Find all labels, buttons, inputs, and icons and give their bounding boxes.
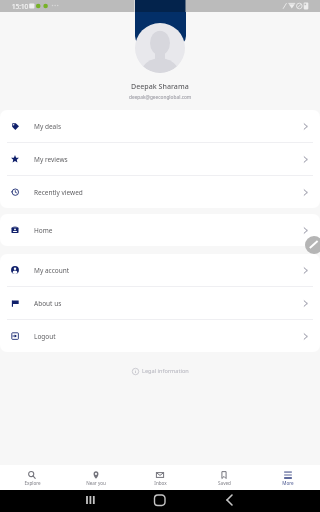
button[interactable]: Near you: [64, 465, 128, 490]
staticText: Saved: [218, 480, 231, 486]
staticText: More: [282, 480, 294, 486]
staticText: About us: [34, 299, 62, 308]
staticText: Logout: [34, 332, 56, 341]
button[interactable]: Explore: [0, 465, 64, 490]
staticText: Legal information: [142, 367, 189, 375]
button[interactable]: About us: [0, 287, 320, 319]
staticText: My reviews: [34, 155, 68, 164]
button[interactable]: Recently viewed: [0, 176, 320, 208]
button[interactable]: Legal information: [0, 367, 320, 375]
button[interactable]: Saved: [192, 465, 256, 490]
staticText: Recently viewed: [34, 188, 83, 197]
staticText: Near you: [86, 480, 106, 486]
button[interactable]: My account: [0, 254, 320, 286]
button[interactable]: My deals: [0, 110, 320, 142]
button[interactable]: More: [256, 465, 320, 490]
button[interactable]: Edit: [305, 236, 320, 254]
button[interactable]: Home: [0, 214, 320, 246]
staticText: Home: [34, 226, 53, 235]
button[interactable]: My reviews: [0, 143, 320, 175]
staticText: 15:10: [12, 2, 29, 11]
staticText: My account: [34, 266, 70, 275]
staticText: deepak@geeconglobal.com: [129, 94, 192, 101]
staticText: My deals: [34, 122, 62, 131]
staticText: Inbox: [154, 480, 167, 486]
staticText: Deepak Sharama: [131, 81, 189, 91]
button[interactable]: Logout: [0, 320, 320, 352]
staticText: Explore: [24, 480, 41, 486]
button[interactable]: Inbox: [128, 465, 192, 490]
